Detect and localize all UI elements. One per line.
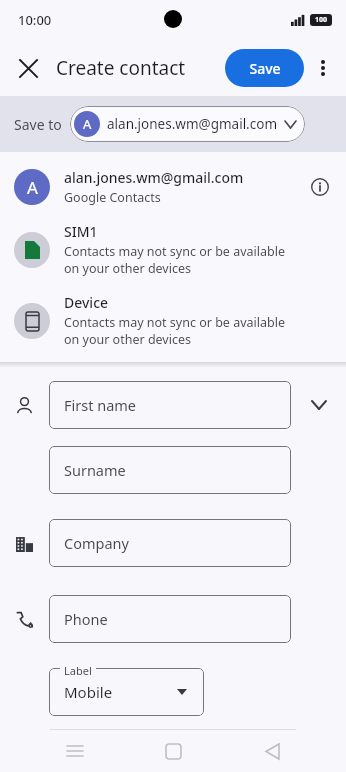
button[interactable]: Device — [0, 285, 346, 356]
staticText: A — [27, 176, 38, 199]
staticText: Save — [249, 59, 281, 78]
button[interactable]: Company — [49, 519, 291, 567]
staticText: Phone — [64, 609, 108, 629]
button[interactable]: Expand name fields — [291, 378, 346, 432]
button[interactable]: Save — [225, 49, 304, 87]
staticText: 100 — [315, 15, 328, 25]
staticText: alan.jones.wm@gmail.com — [64, 168, 244, 187]
staticText: SIM1 — [64, 222, 98, 241]
staticText: Surname — [64, 460, 126, 480]
button[interactable]: Close — [8, 48, 48, 88]
button[interactable]: Phone — [49, 595, 291, 643]
staticText: Contacts may not sync or be available on… — [64, 243, 285, 277]
staticText: Google Contacts — [64, 189, 161, 206]
staticText: A — [83, 115, 92, 133]
button[interactable]: Surname — [49, 446, 291, 494]
button[interactable]: Mobile — [49, 668, 204, 716]
button[interactable]: Recents — [51, 730, 99, 772]
staticText: Create contact — [56, 55, 186, 81]
staticText: Contacts may not sync or be available on… — [64, 314, 285, 348]
staticText: Company — [64, 533, 129, 553]
staticText: Mobile — [64, 682, 113, 702]
staticText: Device — [64, 293, 109, 312]
button[interactable]: SIM1 — [0, 214, 346, 285]
staticText: First name — [64, 395, 137, 415]
staticText: Save to — [14, 115, 62, 134]
button[interactable]: Home — [149, 730, 197, 772]
button[interactable]: More options — [303, 48, 343, 88]
staticText: alan.jones.wm@gmail.com — [107, 115, 278, 133]
button[interactable]: First name — [49, 381, 291, 429]
button[interactable]: Account info — [306, 173, 334, 201]
button[interactable]: A — [0, 160, 346, 214]
button[interactable]: A — [70, 106, 305, 142]
staticText: Label — [64, 663, 92, 678]
staticText: 10:00 — [18, 11, 52, 29]
button[interactable]: Back — [248, 730, 296, 772]
